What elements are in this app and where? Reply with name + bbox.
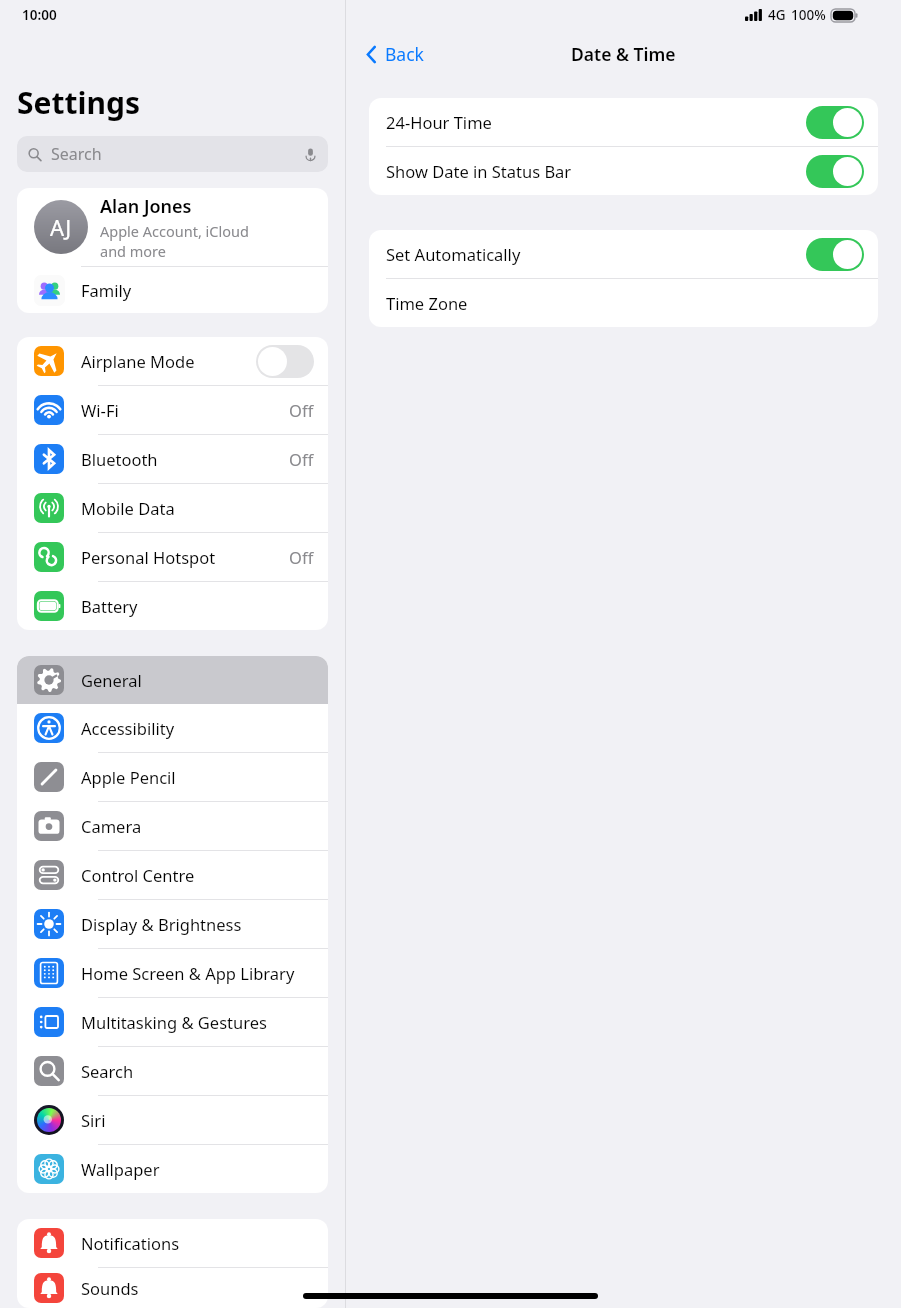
staticText: Camera [81,815,142,837]
staticText: Wallpaper [81,1158,160,1180]
staticText: Airplane Mode [81,350,195,372]
button[interactable]: Personal Hotspot [17,533,328,581]
staticText: Multitasking & Gestures [81,1011,267,1033]
staticText: Set Automatically [386,243,521,265]
staticText: Mobile Data [81,497,175,519]
staticText: Show Date in Status Bar [386,160,572,182]
button[interactable]: Set Automatically [369,230,878,278]
staticText: Notifications [81,1232,180,1254]
staticText: Apple Pencil [81,766,176,788]
staticText: Time Zone [386,292,468,314]
staticText: Off [289,546,314,568]
staticText: and more [100,241,166,261]
button[interactable]: Time Zone [369,279,878,327]
button[interactable]: Notifications [17,1219,328,1267]
button[interactable]: Battery [17,582,328,630]
button[interactable]: On [806,155,864,188]
button[interactable]: Sounds [17,1268,328,1308]
button[interactable]: Camera [17,802,328,850]
button[interactable]: Wallpaper [17,1145,328,1193]
staticText: Search [51,143,102,165]
button[interactable]: On [806,238,864,271]
staticText: Off [289,448,314,470]
staticText: Sounds [81,1277,139,1299]
staticText: Search [81,1060,134,1082]
button[interactable]: Show Date in Status Bar [369,147,878,195]
staticText: Bluetooth [81,448,158,470]
button[interactable]: Off [256,345,314,378]
button[interactable]: Bluetooth [17,435,328,483]
button[interactable]: Wi-Fi [17,386,328,434]
staticText: 4G [768,6,786,24]
staticText: Apple Account, iCloud [100,221,249,241]
staticText: Settings [17,82,140,123]
button[interactable]: AJ [17,188,328,266]
button[interactable]: Multitasking & Gestures [17,998,328,1046]
staticText: Wi-Fi [81,399,119,421]
button[interactable]: On [806,106,864,139]
staticText: Back [385,42,424,66]
button[interactable]: Apple Pencil [17,753,328,801]
staticText: General [81,669,142,691]
button[interactable]: Family [17,267,328,313]
staticText: 24-Hour Time [386,111,492,133]
staticText: Siri [81,1109,106,1131]
button[interactable]: Back [360,38,428,70]
staticText: Accessibility [81,717,175,739]
button[interactable]: Control Centre [17,851,328,899]
button[interactable]: Mobile Data [17,484,328,532]
staticText: Display & Brightness [81,913,242,935]
button[interactable]: 24-Hour Time [369,98,878,146]
staticText: Family [81,279,132,301]
button[interactable]: Siri [17,1096,328,1144]
staticText: Home Screen & App Library [81,962,295,984]
button[interactable]: General [17,656,328,704]
staticText: Battery [81,595,138,617]
staticText: 100% [791,6,826,24]
staticText: Control Centre [81,864,195,886]
button[interactable]: Home Screen & App Library [17,949,328,997]
button[interactable]: Accessibility [17,704,328,752]
button[interactable]: Search [17,1047,328,1095]
staticText: 10:00 [22,6,57,24]
staticText: Alan Jones [100,194,192,219]
staticText: Personal Hotspot [81,546,216,568]
button[interactable]: Airplane Mode [17,337,328,385]
staticText: Date & Time [571,42,676,66]
staticText: AJ [50,212,72,242]
staticText: Off [289,399,314,421]
button[interactable]: Display & Brightness [17,900,328,948]
button[interactable]: Search [17,136,328,172]
